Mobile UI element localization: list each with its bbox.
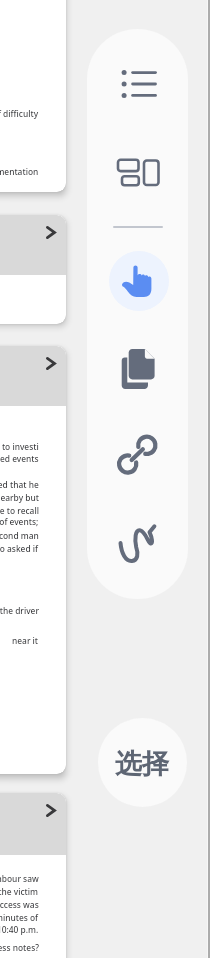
staticText: was then also asked if (0, 543, 39, 554)
staticText: The witness later stated that he (0, 479, 39, 490)
button[interactable]: Duplicate (108, 338, 168, 398)
button[interactable]: Draw (108, 513, 168, 573)
button[interactable]: Officers were dispatched to investi (0, 346, 66, 774)
button[interactable]: Link (108, 425, 168, 485)
staticText: he had been with the driver (0, 605, 39, 616)
button[interactable] (0, 215, 66, 324)
staticText: 选择 (115, 747, 169, 781)
staticText: Are there any further witness notes? (0, 942, 39, 953)
staticText: near it (12, 635, 39, 646)
staticText: whether anyone had seen the victim (0, 886, 39, 897)
button[interactable]: Assess the level of comprehension and no… (0, 0, 66, 192)
staticText: the exact order of events; (0, 516, 39, 527)
staticText: Assess the level of comprehension and no… (0, 108, 39, 119)
staticText: Gather the supporting records and docume… (0, 166, 39, 177)
button[interactable]: Layout (108, 142, 168, 202)
staticText: Officers were dispatched to investi (0, 441, 39, 452)
staticText: had not been able to recall (0, 505, 39, 516)
staticText: had been standing nearby but (0, 492, 39, 503)
button[interactable]: 选择 (98, 718, 187, 807)
staticText: before the incident; access was (0, 899, 39, 910)
button[interactable]: Pointer tool (109, 251, 169, 311)
staticText: gate the reported events (0, 453, 39, 464)
staticText: the call placed at 10:40 p.m. (0, 924, 39, 935)
button[interactable]: Bulleted list (109, 54, 169, 114)
staticText: restricted after a few minutes of (0, 912, 39, 923)
staticText: a second man (0, 530, 39, 541)
staticText: Confirm whether the neighbour saw (0, 873, 39, 884)
button[interactable]: Confirm whether the neighbour saw (0, 793, 66, 958)
